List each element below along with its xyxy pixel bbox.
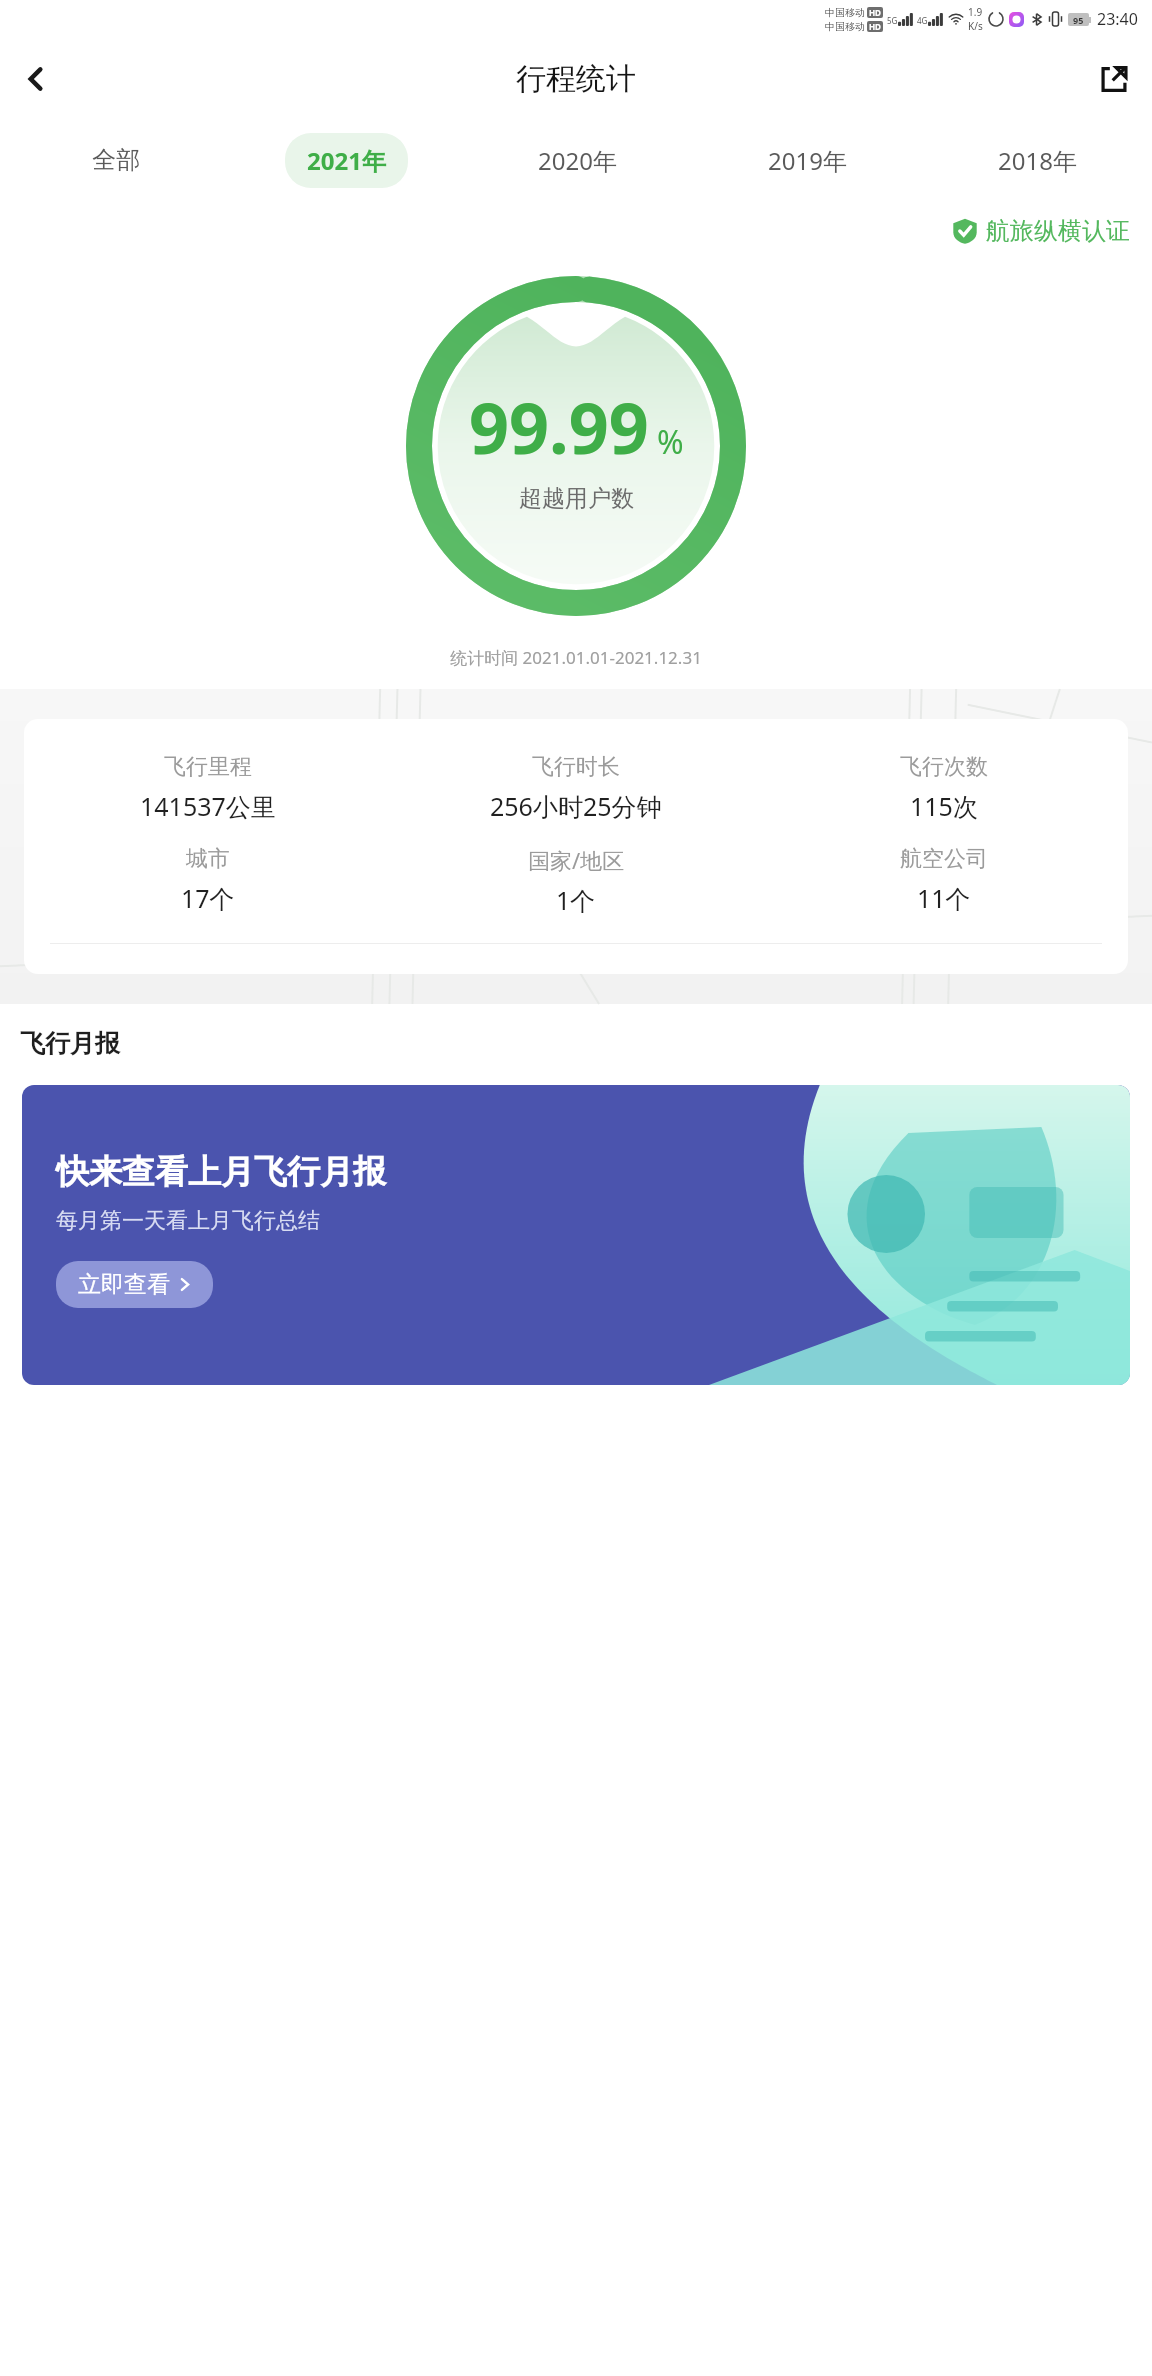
button[interactable]: Share [1086, 51, 1142, 107]
staticText: 256小时25分钟 [490, 789, 662, 823]
staticText: 2019年 [768, 144, 847, 177]
staticText: 中国移动 [825, 6, 865, 19]
staticText: 飞行时长 [532, 753, 620, 781]
staticText: 立即查看 [78, 1270, 170, 1299]
staticText: 航旅纵横认证 [986, 216, 1130, 246]
button[interactable]: 2020年 [516, 133, 639, 188]
staticText: 飞行次数 [900, 753, 988, 781]
staticText: 11个 [917, 881, 971, 915]
button[interactable]: 2021年 [285, 133, 408, 188]
staticText: 城市 [186, 845, 230, 873]
staticText: 统计时间 2021.01.01-2021.12.31 [0, 646, 1152, 669]
staticText: 2021年 [307, 144, 386, 177]
button[interactable]: 全部 [70, 134, 162, 186]
staticText: 95 [1073, 14, 1084, 26]
staticText: 2020年 [538, 144, 617, 177]
staticText: 每月第一天看上月飞行总结 [56, 1207, 320, 1235]
staticText: 飞行月报 [20, 1028, 120, 1059]
staticText: 航空公司 [900, 845, 988, 873]
button[interactable]: 2019年 [746, 133, 869, 188]
staticText: 115次 [910, 789, 978, 823]
staticText: 全部 [92, 145, 140, 175]
staticText: 141537公里 [140, 789, 276, 823]
button[interactable]: 快来查看上月飞行月报 [22, 1085, 1130, 1385]
staticText: 快来查看上月飞行月报 [56, 1151, 386, 1193]
staticText: K/s [968, 19, 983, 33]
staticText: 飞行里程 [164, 753, 252, 781]
staticText: 1.9 [968, 5, 983, 19]
staticText: 1个 [556, 883, 596, 917]
button[interactable]: 飞行里程 [24, 719, 1128, 974]
staticText: HD [869, 21, 881, 32]
staticText: 23:40 [1097, 8, 1138, 30]
staticText: 国家/地区 [528, 845, 625, 875]
staticText: % [657, 420, 684, 464]
staticText: 99.99 [469, 379, 649, 474]
staticText: 中国移动 [825, 20, 865, 33]
staticText: 2018年 [998, 144, 1077, 177]
staticText: 超越用户数 [519, 484, 634, 513]
staticText: HD [869, 7, 881, 18]
staticText: 5G [887, 15, 898, 26]
staticText: 4G [917, 15, 928, 26]
button[interactable]: 2018年 [976, 133, 1099, 188]
button[interactable]: 立即查看 [56, 1261, 213, 1308]
button[interactable]: Back [8, 51, 64, 107]
staticText: 行程统计 [516, 60, 636, 98]
staticText: 17个 [181, 881, 235, 915]
